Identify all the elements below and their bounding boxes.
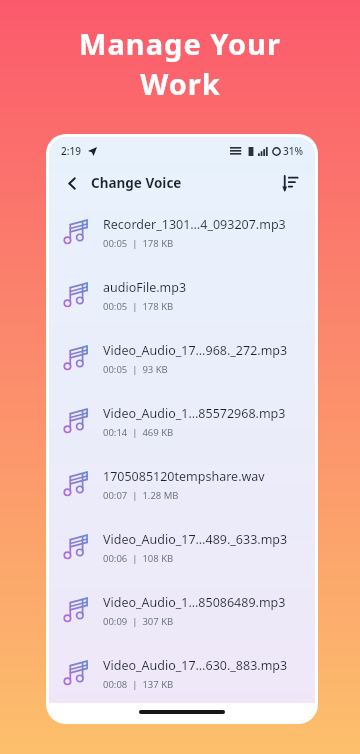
- staticText: Video_Audio_1…85572968.mp3: [103, 405, 286, 422]
- staticText: 00:07 | 1.28 MB: [103, 489, 179, 502]
- button[interactable]: audioFile.mp3: [49, 264, 315, 327]
- staticText: Video_Audio_17…489._633.mp3: [103, 531, 288, 548]
- staticText: Video_Audio_17…968._272.mp3: [103, 342, 288, 359]
- staticText: 00:05 | 178 KB: [103, 237, 174, 250]
- staticText: Change Voice: [91, 174, 182, 192]
- staticText: 2:19: [61, 144, 81, 158]
- staticText: 00:05 | 93 KB: [103, 363, 168, 376]
- button[interactable]: 1705085120tempshare.wav: [49, 453, 315, 516]
- staticText: 00:14 | 469 KB: [103, 426, 174, 439]
- button[interactable]: Video_Audio_17…968._272.mp3: [49, 327, 315, 390]
- staticText: Video_Audio_1…85001630.mp3: [103, 705, 286, 721]
- staticText: Video_Audio_17…630._883.mp3: [103, 657, 288, 674]
- staticText: 00:09 | 307 KB: [103, 615, 174, 628]
- button[interactable]: Video_Audio_17…489._633.mp3: [49, 516, 315, 579]
- staticText: Work: [140, 64, 221, 103]
- button[interactable]: Sort: [275, 169, 303, 197]
- staticText: Recorder_1301…4_093207.mp3: [103, 216, 286, 233]
- button[interactable]: Video_Audio_1…85001630.mp3: [49, 705, 315, 721]
- staticText: Video_Audio_1…85086489.mp3: [103, 594, 286, 611]
- staticText: 00:08 | 137 KB: [103, 678, 174, 691]
- staticText: 00:05 | 178 KB: [103, 300, 174, 313]
- button[interactable]: Video_Audio_17…630._883.mp3: [49, 642, 315, 705]
- staticText: 00:06 | 108 KB: [103, 552, 174, 565]
- staticText: 1705085120tempshare.wav: [103, 468, 265, 485]
- button[interactable]: Recorder_1301…4_093207.mp3: [49, 201, 315, 264]
- button[interactable]: Video_Audio_1…85086489.mp3: [49, 579, 315, 642]
- staticText: Manage Your: [79, 24, 281, 63]
- staticText: 31%: [283, 144, 303, 158]
- staticText: audioFile.mp3: [103, 279, 187, 296]
- button[interactable]: Video_Audio_1…85572968.mp3: [49, 390, 315, 453]
- button[interactable]: Back: [59, 170, 85, 196]
